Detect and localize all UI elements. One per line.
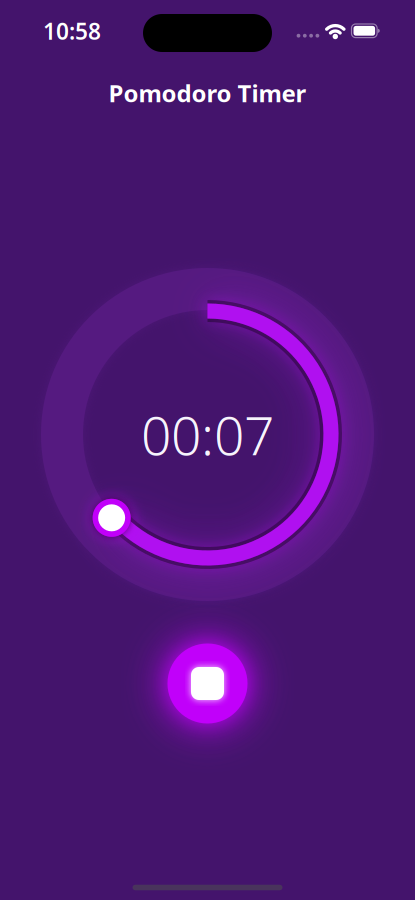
button[interactable]: Stop bbox=[112, 588, 302, 778]
staticText: Pomodoro Timer bbox=[108, 77, 306, 109]
staticText: 10:58 bbox=[43, 16, 101, 46]
staticText: 00:07 bbox=[141, 399, 274, 470]
